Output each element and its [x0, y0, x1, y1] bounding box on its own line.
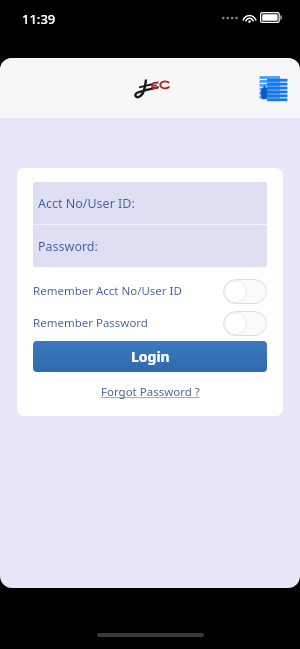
button[interactable]: Forgot Password ?: [97, 382, 204, 402]
staticText: Acct No/User ID:: [38, 195, 135, 212]
button[interactable]: Acct No/User ID:: [33, 182, 267, 224]
button[interactable]: Menu: [256, 71, 290, 105]
button[interactable]: Remember Password: [33, 310, 267, 336]
staticText: Forgot Password ?: [101, 384, 200, 400]
button[interactable]: Remember Acct No/User ID: [33, 278, 267, 304]
button[interactable]: Login: [33, 341, 267, 372]
staticText: 11:39: [22, 10, 56, 28]
staticText: Remember Password: [33, 315, 148, 331]
button[interactable]: Password:: [33, 225, 267, 267]
staticText: Password:: [38, 238, 98, 255]
staticText: Login: [131, 347, 170, 366]
staticText: Remember Acct No/User ID: [33, 283, 182, 299]
